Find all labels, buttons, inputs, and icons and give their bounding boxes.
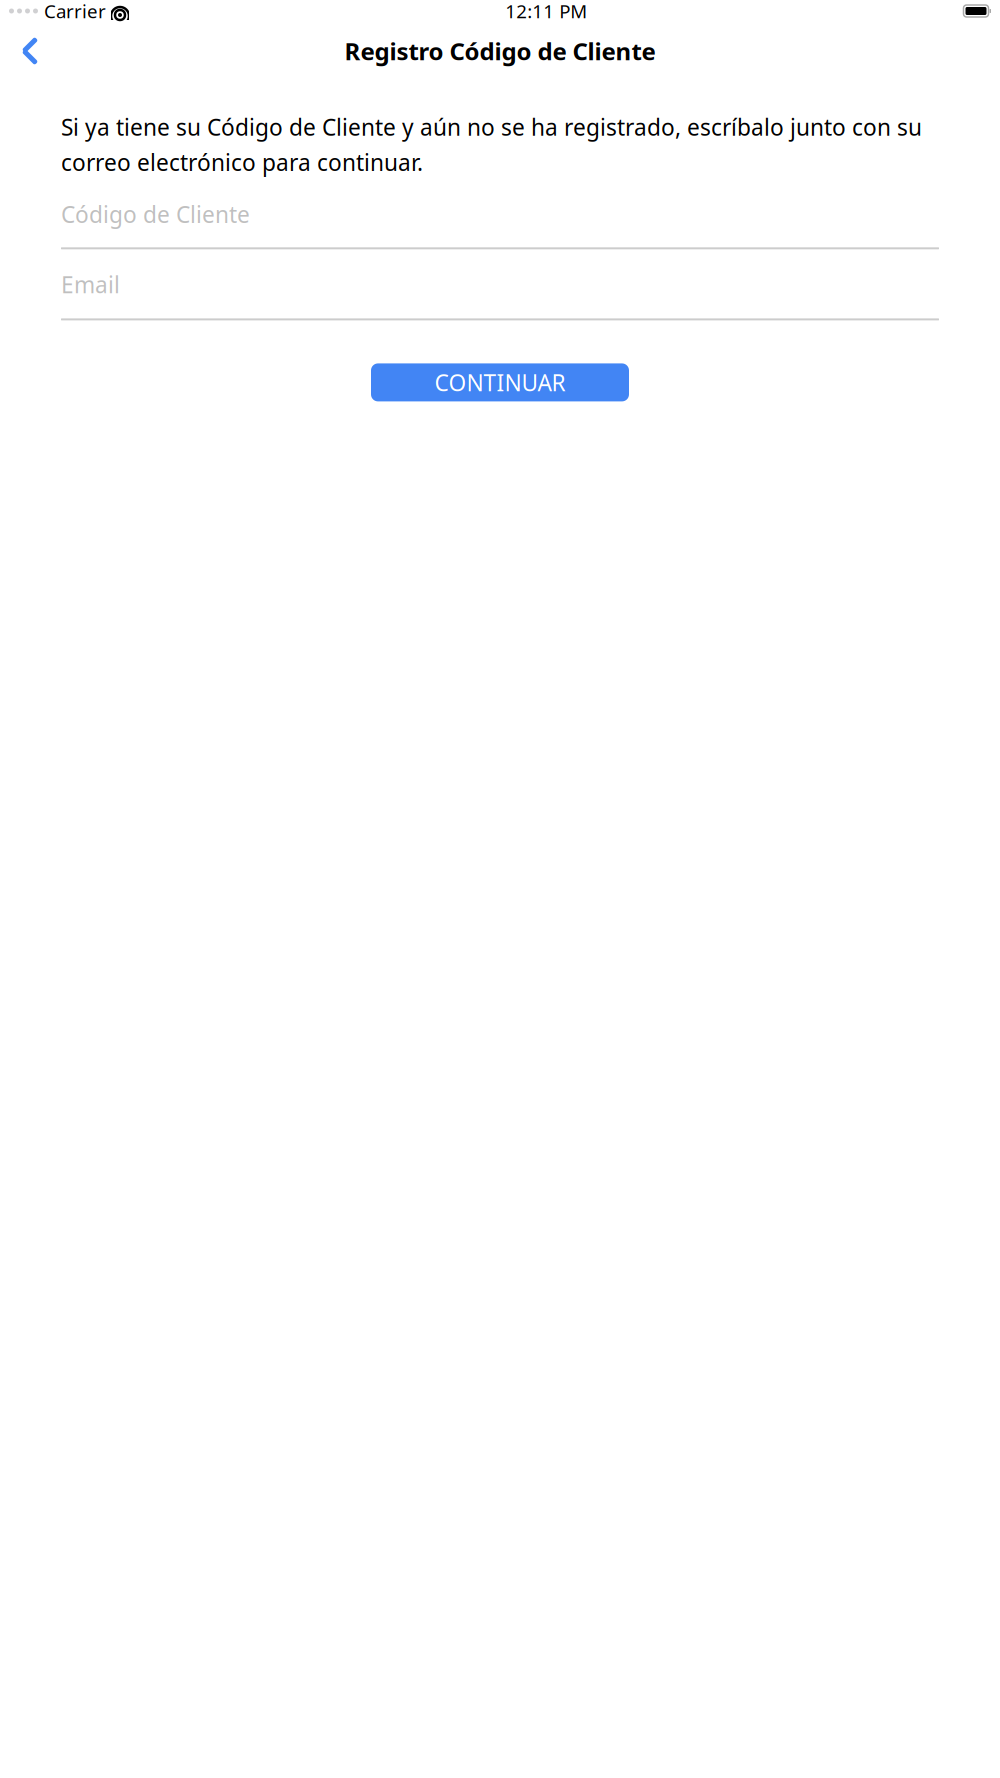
button[interactable]: CONTINUAR [371,363,629,401]
staticText: Código de Cliente [61,199,250,229]
staticText: Carrier [44,0,106,23]
staticText: CONTINUAR [434,367,565,397]
staticText: Email [61,269,120,299]
staticText: Si ya tiene su Código de Cliente y aún n… [61,112,922,177]
staticText: Registro Código de Cliente [344,35,655,67]
button[interactable]: Back [8,29,52,73]
staticText: 12:11 PM [505,0,587,23]
